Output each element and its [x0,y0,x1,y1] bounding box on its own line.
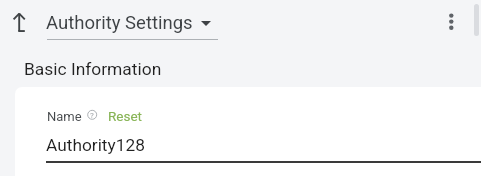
button[interactable]: More options [437,5,466,38]
button[interactable]: Navigate up [5,5,39,39]
staticText: Name [47,109,82,124]
staticText: ? [90,111,94,120]
staticText: Authority Settings [46,12,193,34]
button[interactable]: Reset [108,108,143,124]
staticText: Authority128 [46,135,145,155]
button[interactable]: Help [84,107,100,123]
staticText: Basic Information [24,59,162,79]
button[interactable]: Authority Settings [46,12,211,34]
